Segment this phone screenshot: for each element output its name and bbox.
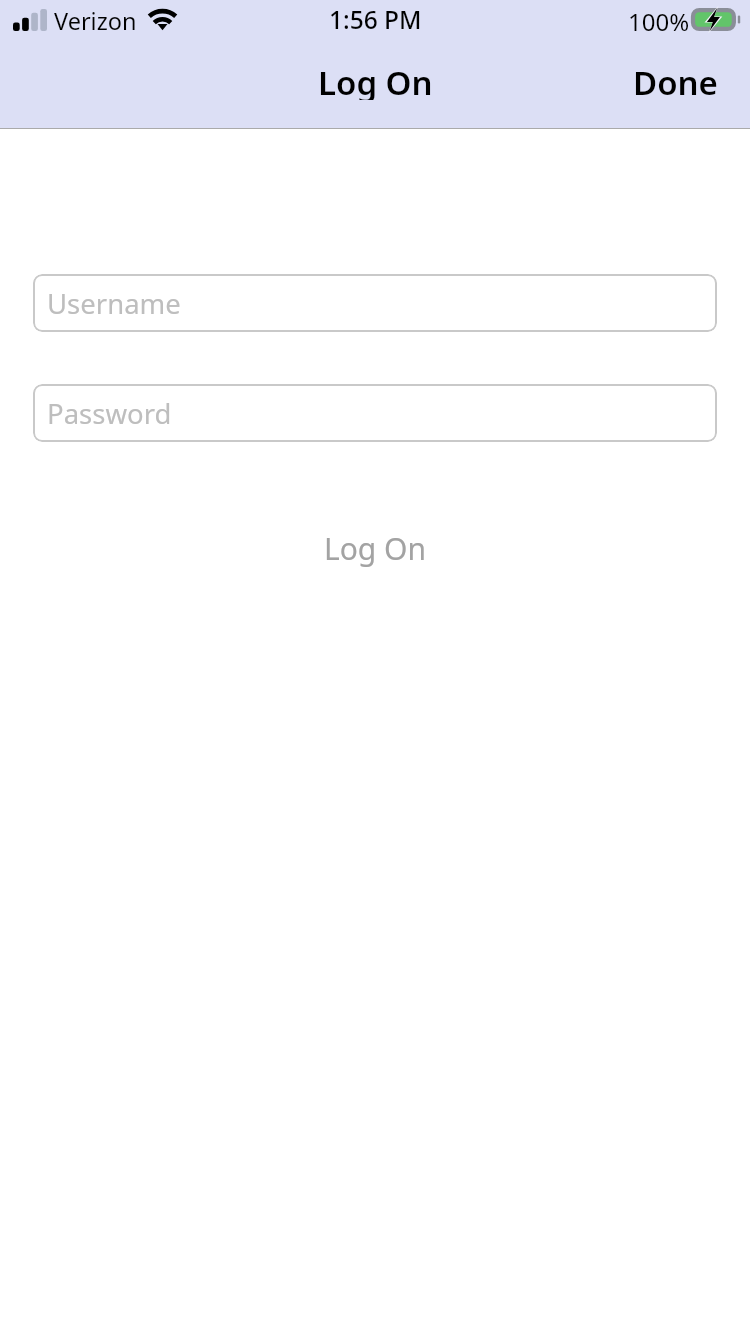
staticText: Username [47, 285, 181, 322]
other: Wi-Fi connected [147, 9, 178, 31]
other: Cellular signal strength: 2 of 4 bars [13, 9, 47, 31]
staticText: Log On [324, 528, 427, 569]
button[interactable]: Log On [0, 519, 750, 577]
staticText: Verizon [54, 5, 137, 35]
button[interactable]: Done [621, 50, 730, 106]
staticText: Password [47, 395, 172, 432]
staticText: 1:56 PM [329, 3, 422, 33]
staticText: 100% [628, 5, 690, 35]
button[interactable]: Username [33, 274, 717, 332]
other: Battery 100 percent, charging [691, 8, 740, 31]
staticText: Done [633, 60, 718, 96]
staticText: Log On [318, 60, 433, 100]
button[interactable]: Password [33, 384, 717, 442]
